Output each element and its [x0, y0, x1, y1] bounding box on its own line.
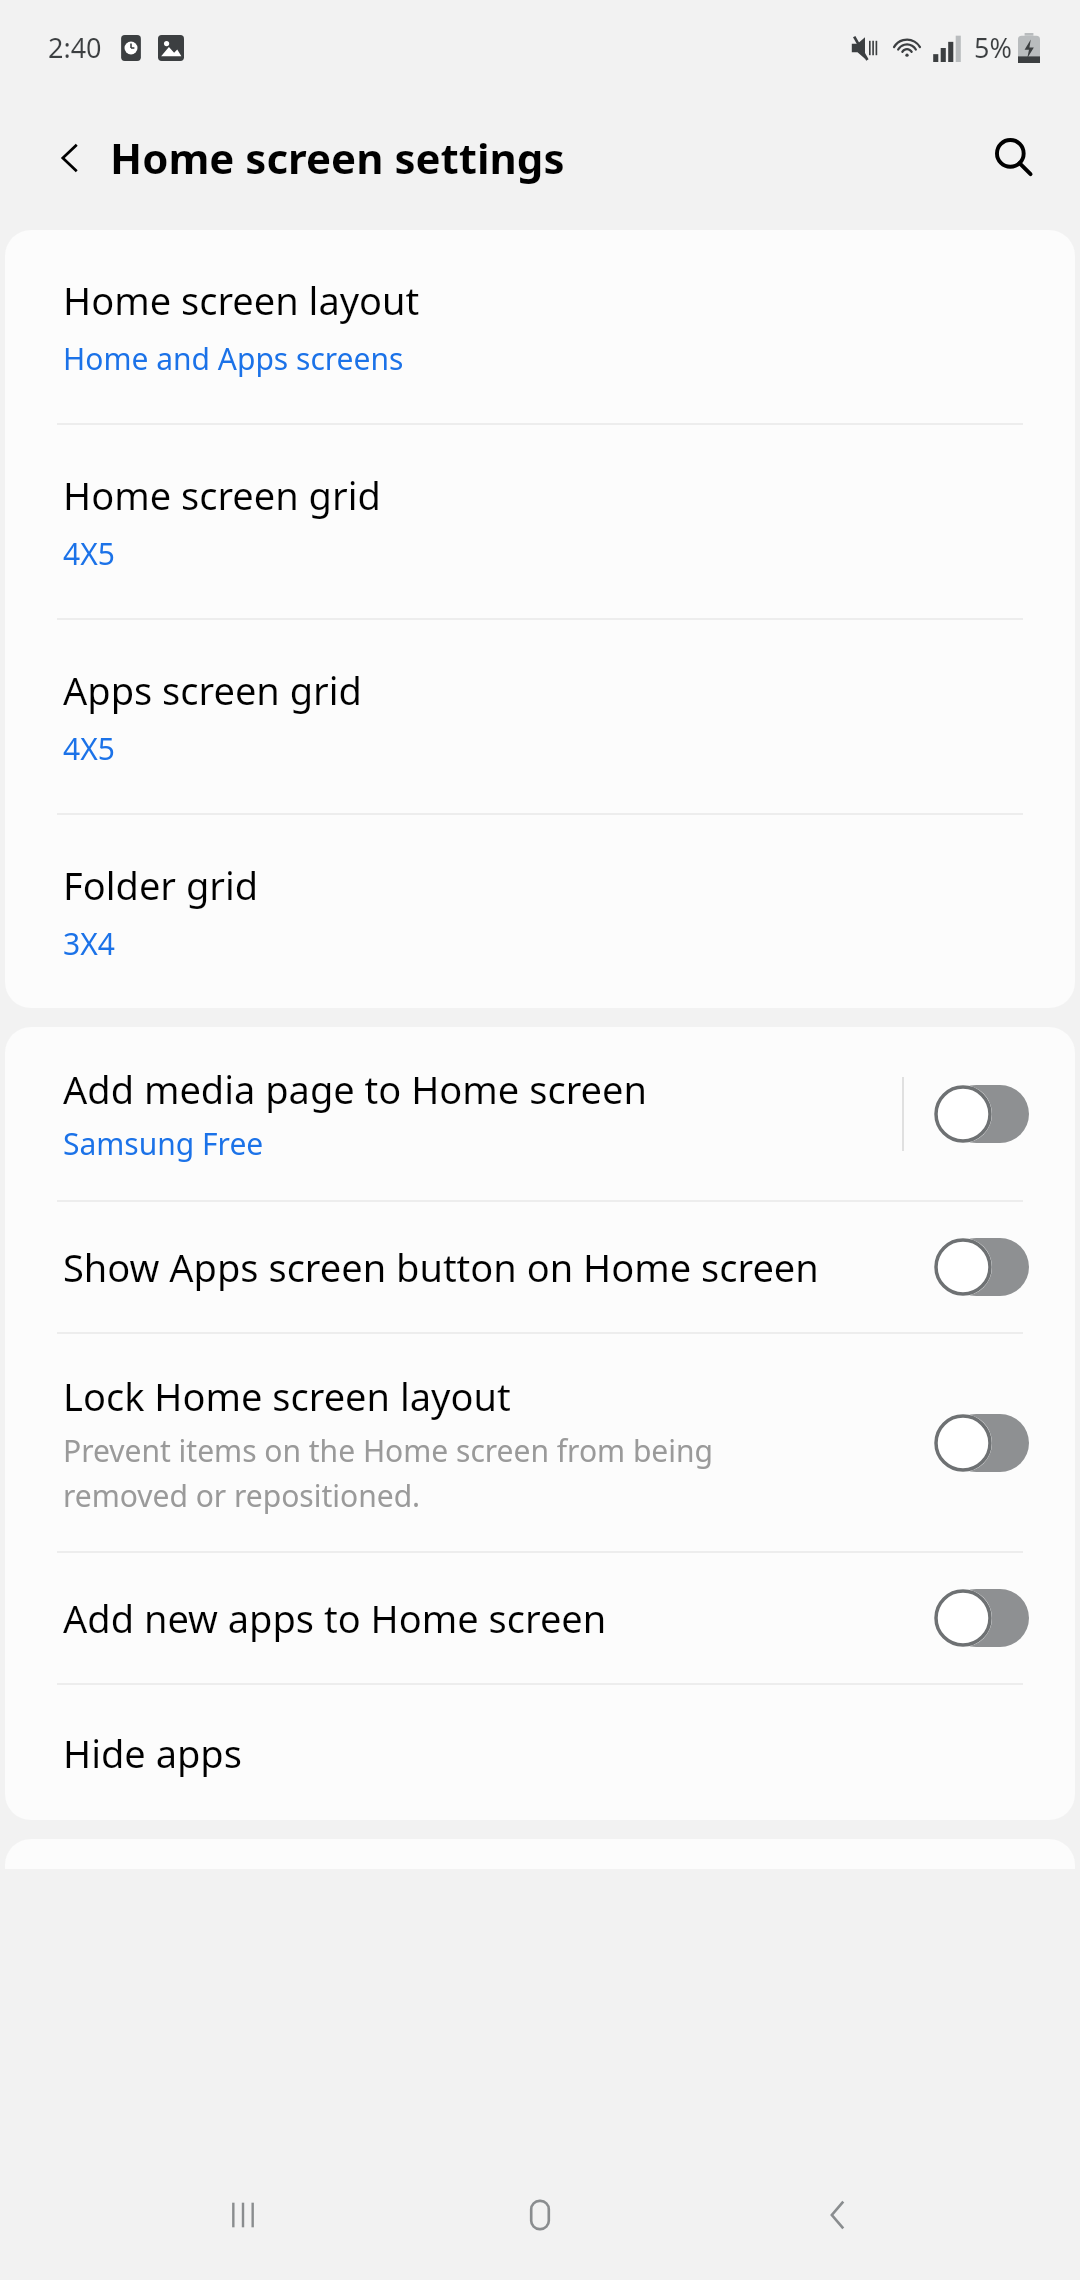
staticText: Add media page to Home screen [63, 1063, 647, 1115]
button[interactable]: Home [485, 2160, 595, 2270]
staticText: Prevent items on the Home screen from be… [63, 1430, 713, 1515]
button[interactable]: Apps screen grid [5, 620, 1075, 813]
staticText: Lock Home screen layout [63, 1370, 511, 1422]
button[interactable]: Toggle off [934, 1238, 1029, 1296]
staticText: Home screen settings [110, 129, 565, 186]
button[interactable]: Add new apps to Home screen [5, 1553, 1075, 1683]
button[interactable]: Toggle off [934, 1589, 1029, 1647]
staticText: Home screen grid [63, 469, 381, 521]
button[interactable]: Home screen grid [5, 425, 1075, 618]
staticText: Apps screen grid [63, 664, 362, 716]
button[interactable]: Back [36, 124, 104, 192]
staticText: 4X5 [63, 533, 115, 574]
staticText: Hide apps [63, 1727, 242, 1779]
staticText: Add new apps to Home screen [63, 1592, 607, 1644]
staticText: 3X4 [63, 923, 115, 964]
button[interactable]: Folder grid [5, 815, 1075, 1008]
staticText: 5% [974, 29, 1012, 66]
button[interactable]: Add media page to Home screen [5, 1027, 1075, 1200]
staticText: 2:40 [48, 29, 102, 66]
staticText: 4X5 [63, 728, 115, 769]
staticText: Home screen layout [63, 274, 420, 326]
staticText: Folder grid [63, 859, 259, 911]
button[interactable]: Back [783, 2160, 893, 2270]
button[interactable]: Toggle off [934, 1085, 1029, 1143]
button[interactable]: Recents [188, 2160, 298, 2270]
button[interactable]: Hide apps [5, 1685, 1075, 1820]
button[interactable]: Home screen layout [5, 230, 1075, 423]
staticText: Samsung Free [63, 1123, 264, 1164]
staticText: Home and Apps screens [63, 338, 404, 379]
staticText: Show Apps screen button on Home screen [63, 1241, 819, 1293]
button[interactable]: Toggle off [934, 1414, 1029, 1472]
button[interactable]: Lock Home screen layout [5, 1334, 1075, 1551]
button[interactable]: Search [980, 124, 1048, 192]
button[interactable]: Show Apps screen button on Home screen [5, 1202, 1075, 1332]
